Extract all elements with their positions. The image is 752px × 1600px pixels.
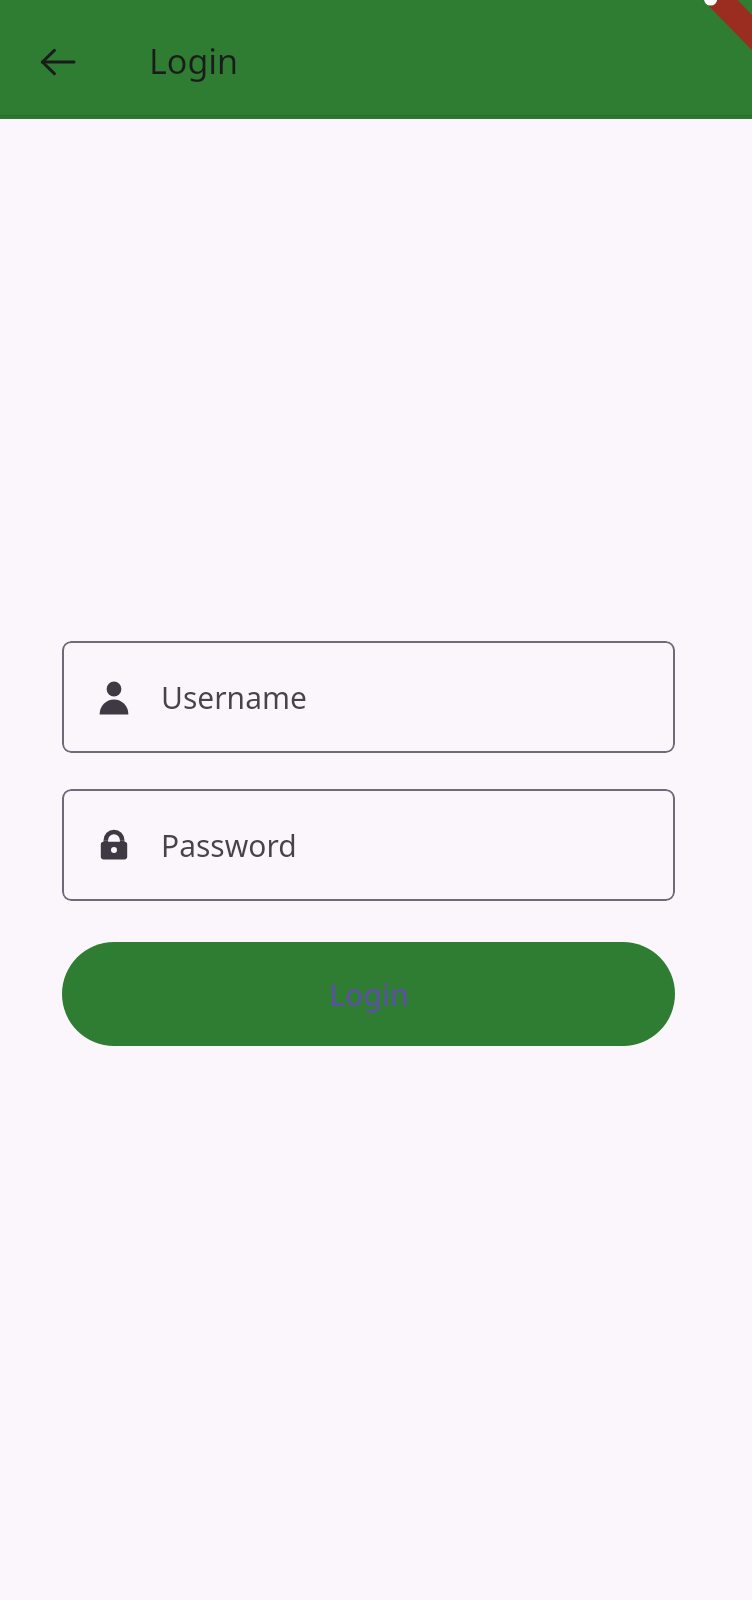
staticText: Login [149,38,239,84]
button[interactable]: Back [22,26,94,98]
staticText: Username [161,677,307,718]
button[interactable]: Login [62,942,675,1046]
staticText: Login [329,974,409,1015]
staticText: Password [161,825,297,866]
button[interactable]: Username [62,641,675,753]
button[interactable]: Password [62,789,675,901]
